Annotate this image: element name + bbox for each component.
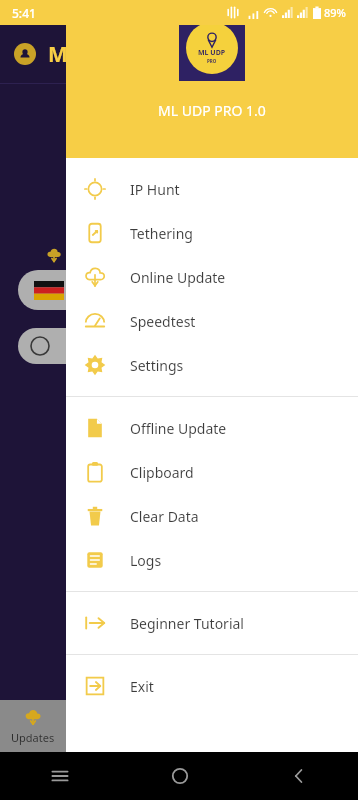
staticText: Clear Data	[130, 507, 199, 526]
button[interactable]: Recents	[0, 752, 120, 800]
button[interactable]: Online Update	[66, 255, 358, 299]
button[interactable]: Exit	[66, 664, 358, 708]
button[interactable]: Home	[120, 752, 239, 800]
staticText: 5:41	[12, 5, 36, 21]
staticText: IP Hunt	[130, 180, 180, 199]
staticText: Clipboard	[130, 463, 194, 482]
button[interactable]: Logs	[66, 538, 358, 582]
button[interactable]: Home	[120, 752, 239, 800]
staticText: Logs	[130, 551, 162, 570]
staticText: ML	[48, 40, 80, 69]
button[interactable]: Offline Update	[66, 406, 358, 450]
button[interactable]: Clear Data	[66, 494, 358, 538]
staticText: Tethering	[130, 224, 193, 243]
button[interactable]: Beginner Tutorial	[66, 601, 358, 645]
staticText: Beginner Tutorial	[130, 614, 244, 633]
button[interactable]: IP Hunt	[66, 167, 358, 211]
button[interactable]: Speedtest	[66, 299, 358, 343]
staticText: Offline Update	[130, 419, 227, 438]
staticText: ML UDP	[198, 48, 226, 58]
staticText: 89%	[324, 5, 346, 20]
button[interactable]: Settings	[66, 343, 358, 387]
staticText: Settings	[130, 356, 184, 375]
button[interactable]: Back	[239, 752, 358, 800]
staticText: PRO	[207, 58, 217, 64]
staticText: Speedtest	[130, 312, 196, 331]
staticText: ML UDP PRO 1.0	[158, 101, 266, 120]
button[interactable]: Clipboard	[66, 450, 358, 494]
staticText: Updates	[11, 730, 55, 745]
button[interactable]: Recents	[0, 752, 120, 800]
button[interactable]: Tethering	[66, 211, 358, 255]
button[interactable]: Back	[239, 752, 358, 800]
staticText: Online Update	[130, 268, 226, 287]
staticText: Exit	[130, 677, 154, 696]
